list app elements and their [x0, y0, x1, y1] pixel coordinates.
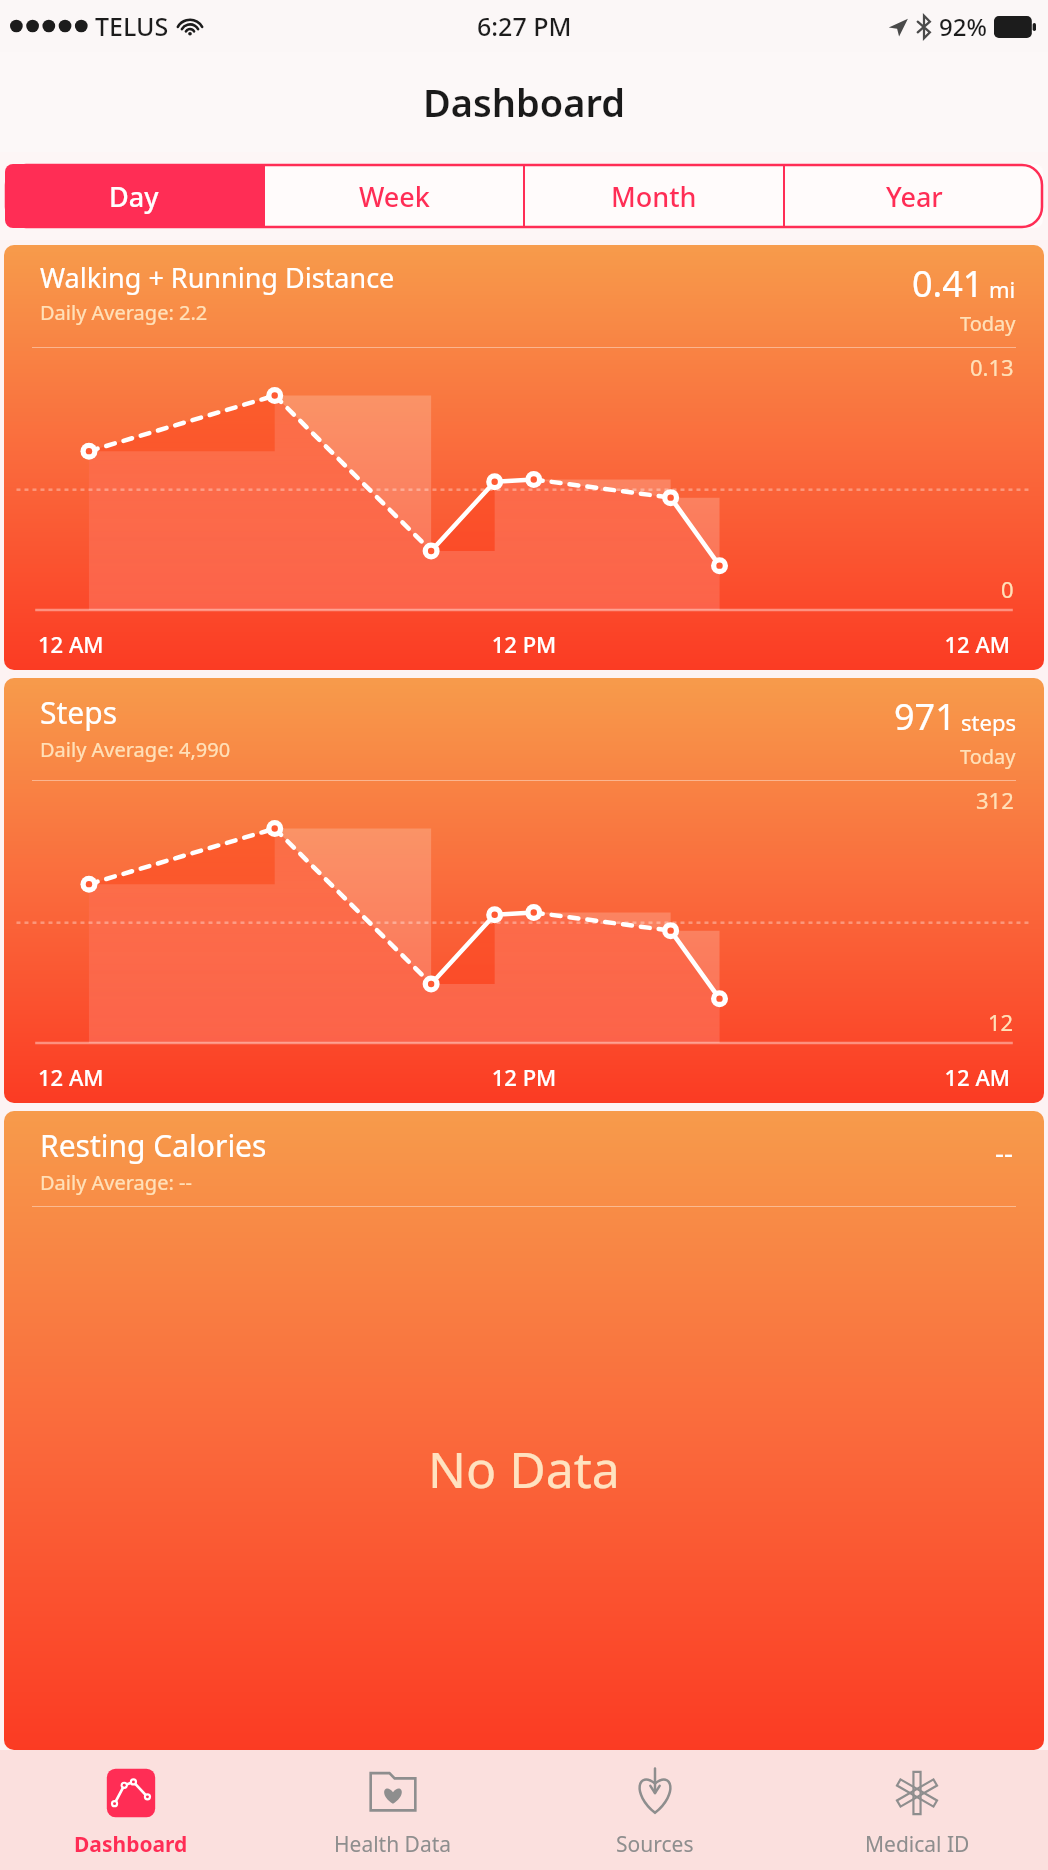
staticText: Dashboard — [423, 76, 626, 128]
staticText: Month — [611, 178, 697, 215]
staticText: 12 AM — [686, 629, 1010, 659]
button[interactable]: Month — [525, 164, 783, 228]
staticText: Today — [960, 310, 1016, 337]
staticText: 12 — [988, 1007, 1014, 1037]
staticText: 971 — [894, 692, 956, 741]
staticText: 312 — [976, 785, 1014, 815]
staticText: Steps — [40, 692, 118, 733]
staticText: mi — [989, 274, 1016, 304]
staticText: Resting Calories — [40, 1125, 267, 1166]
staticText: Health Data — [334, 1830, 452, 1859]
staticText: 12 PM — [362, 629, 686, 659]
staticText: Daily Average: -- — [40, 1169, 192, 1196]
staticText: Today — [960, 743, 1016, 770]
staticText: Daily Average: 2.2 — [40, 299, 208, 326]
button[interactable]: Sources — [524, 1750, 786, 1870]
staticText: -- — [995, 1133, 1014, 1171]
staticText: 6:27 PM — [477, 9, 572, 43]
staticText: 92% — [939, 10, 987, 43]
staticText: 12 AM — [38, 1062, 362, 1092]
button[interactable]: Resting Calories — [4, 1111, 1044, 1750]
button[interactable]: Medical ID — [786, 1750, 1048, 1870]
button[interactable]: Steps — [4, 678, 1044, 1103]
staticText: Daily Average: 4,990 — [40, 736, 231, 763]
staticText: Walking + Running Distance — [40, 259, 395, 296]
staticText: 12 AM — [38, 629, 362, 659]
button[interactable]: Week — [265, 164, 523, 228]
staticText: 0.13 — [970, 352, 1014, 382]
button[interactable]: Day — [5, 164, 263, 228]
staticText: Medical ID — [865, 1830, 970, 1859]
staticText: 12 PM — [362, 1062, 686, 1092]
button[interactable]: Walking + Running Distance — [4, 245, 1044, 670]
button[interactable]: Health Data — [262, 1750, 524, 1870]
staticText: Dashboard — [74, 1830, 188, 1859]
staticText: 0.41 — [912, 259, 984, 308]
staticText: TELUS — [95, 9, 169, 43]
staticText: Sources — [616, 1830, 694, 1859]
button[interactable]: Year — [785, 164, 1043, 228]
button[interactable]: Dashboard — [0, 1750, 262, 1870]
staticText: 12 AM — [686, 1062, 1010, 1092]
staticText: steps — [961, 707, 1016, 737]
staticText: Year — [886, 178, 943, 215]
staticText: 0 — [1001, 574, 1014, 604]
staticText: Week — [359, 178, 430, 215]
staticText: Day — [109, 178, 159, 215]
staticText: No Data — [428, 1435, 620, 1503]
